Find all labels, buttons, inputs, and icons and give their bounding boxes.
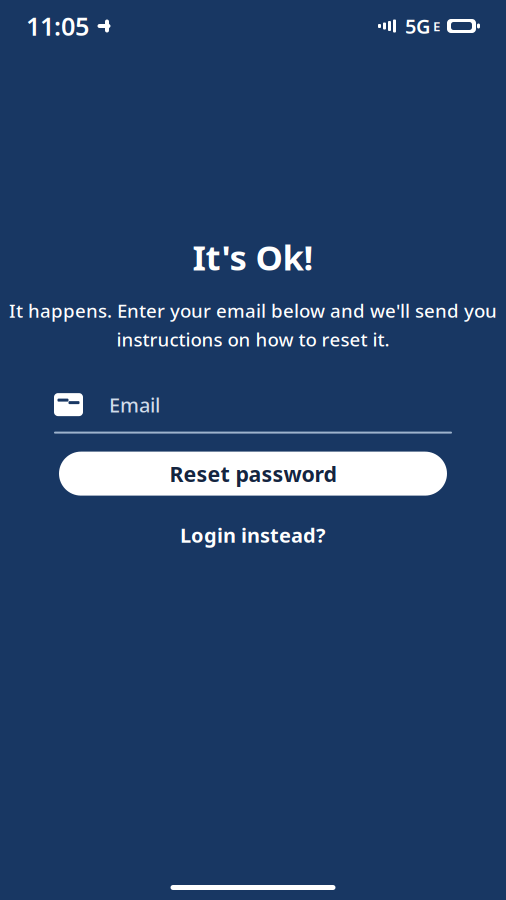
staticText: Reset password	[169, 459, 336, 488]
button[interactable]: Login instead?	[164, 516, 342, 554]
staticText: It happens. Enter your email below and w…	[9, 298, 497, 323]
staticText: 11:05	[26, 9, 89, 43]
staticText: 5G	[405, 13, 431, 39]
staticText: It's Ok!	[192, 234, 313, 280]
button[interactable]: Reset password	[59, 452, 447, 496]
staticText: Login instead?	[180, 522, 326, 548]
staticText: instructions on how to reset it.	[116, 327, 389, 352]
staticText: E	[433, 17, 440, 35]
staticText: Email	[109, 391, 160, 418]
